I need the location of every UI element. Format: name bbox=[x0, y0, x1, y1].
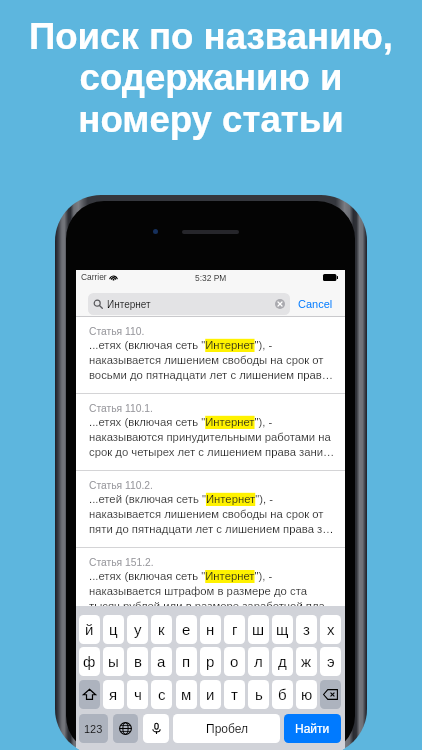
staticText: с bbox=[158, 686, 166, 703]
button[interactable]: о bbox=[224, 647, 245, 676]
button[interactable]: ц bbox=[103, 615, 124, 644]
button[interactable]: ж bbox=[296, 647, 317, 676]
staticText: ж bbox=[301, 653, 312, 670]
button[interactable]: н bbox=[200, 615, 221, 644]
button[interactable]: л bbox=[248, 647, 269, 676]
staticText: ф bbox=[83, 653, 96, 670]
staticText: н bbox=[206, 621, 215, 638]
staticText: ц bbox=[109, 621, 118, 638]
staticText: ...етей (включая сеть "Интернет"), - нак… bbox=[89, 493, 334, 535]
staticText: Carrier bbox=[81, 272, 107, 281]
button[interactable]: в bbox=[127, 647, 148, 676]
button[interactable]: т bbox=[224, 680, 245, 709]
staticText: ...етях (включая сеть "Интернет"), - нак… bbox=[89, 570, 337, 606]
button[interactable]: Dictate bbox=[143, 714, 169, 743]
button[interactable]: Clear bbox=[275, 299, 285, 309]
button[interactable]: ф bbox=[79, 647, 100, 676]
button[interactable]: к bbox=[151, 615, 172, 644]
staticText: Статья 151.2. bbox=[89, 557, 154, 569]
staticText: ч bbox=[134, 686, 142, 703]
staticText: Интернет bbox=[107, 299, 151, 310]
button[interactable]: м bbox=[176, 680, 197, 709]
button[interactable]: щ bbox=[272, 615, 293, 644]
staticText: е bbox=[182, 621, 191, 638]
button[interactable]: с bbox=[151, 680, 172, 709]
staticText: и bbox=[206, 686, 215, 703]
button[interactable]: е bbox=[176, 615, 197, 644]
staticText: к bbox=[158, 621, 165, 638]
button[interactable]: ч bbox=[127, 680, 148, 709]
staticText: я bbox=[109, 686, 118, 703]
button[interactable]: ю bbox=[296, 680, 317, 709]
staticText: ...етях (включая сеть "Интернет"), - нак… bbox=[89, 416, 335, 458]
staticText: э bbox=[327, 653, 335, 670]
button[interactable]: г bbox=[224, 615, 245, 644]
button[interactable]: Статья 110.1. bbox=[76, 394, 345, 470]
staticText: г bbox=[232, 621, 238, 638]
button[interactable]: Backspace bbox=[320, 680, 341, 709]
staticText: а bbox=[157, 653, 166, 670]
button[interactable]: Интернет bbox=[88, 293, 290, 315]
button[interactable]: Статья 151.2. bbox=[76, 548, 345, 606]
button[interactable]: у bbox=[127, 615, 148, 644]
button[interactable]: й bbox=[79, 615, 100, 644]
button[interactable]: Найти bbox=[284, 714, 341, 743]
button[interactable]: Пробел bbox=[173, 714, 280, 743]
staticText: м bbox=[181, 686, 192, 703]
staticText: Cancel bbox=[298, 298, 333, 310]
button[interactable]: х bbox=[320, 615, 341, 644]
staticText: п bbox=[182, 653, 191, 670]
staticText: Статья 110.1. bbox=[89, 403, 153, 415]
staticText: Статья 110.2. bbox=[89, 480, 153, 492]
button[interactable]: Language bbox=[113, 714, 138, 743]
button[interactable]: Статья 110.2. bbox=[76, 471, 345, 547]
staticText: 123 bbox=[84, 723, 103, 735]
staticText: ш bbox=[252, 621, 265, 638]
staticText: х bbox=[327, 621, 335, 638]
button[interactable]: ь bbox=[248, 680, 269, 709]
button[interactable]: р bbox=[200, 647, 221, 676]
staticText: Найти bbox=[295, 722, 330, 735]
button[interactable]: и bbox=[200, 680, 221, 709]
staticText: з bbox=[303, 621, 310, 638]
staticText: б bbox=[278, 686, 287, 703]
button[interactable]: Cancel bbox=[298, 293, 333, 315]
staticText: 5:32 PM bbox=[195, 273, 227, 282]
staticText: ы bbox=[108, 653, 119, 670]
staticText: щ bbox=[276, 621, 289, 638]
button[interactable]: э bbox=[320, 647, 341, 676]
button[interactable]: ш bbox=[248, 615, 269, 644]
button[interactable]: Статья 110. bbox=[76, 317, 345, 393]
button[interactable]: а bbox=[151, 647, 172, 676]
staticText: в bbox=[134, 653, 142, 670]
staticText: д bbox=[278, 653, 287, 670]
staticText: л bbox=[254, 653, 263, 670]
staticText: т bbox=[231, 686, 238, 703]
staticText: р bbox=[206, 653, 215, 670]
button[interactable]: п bbox=[176, 647, 197, 676]
button[interactable]: 123 bbox=[79, 714, 108, 743]
button[interactable]: з bbox=[296, 615, 317, 644]
staticText: ь bbox=[255, 686, 263, 703]
button[interactable]: Shift bbox=[79, 680, 100, 709]
staticText: Пробел bbox=[206, 722, 248, 735]
button[interactable]: б bbox=[272, 680, 293, 709]
staticText: о bbox=[230, 653, 239, 670]
staticText: ю bbox=[301, 686, 313, 703]
button[interactable]: д bbox=[272, 647, 293, 676]
staticText: й bbox=[85, 621, 94, 638]
staticText: Статья 110. bbox=[89, 326, 145, 338]
staticText: Поиск по названию, содержанию и номеру с… bbox=[0, 16, 422, 140]
staticText: ...етях (включая сеть "Интернет"), - нак… bbox=[89, 339, 334, 381]
button[interactable]: я bbox=[103, 680, 124, 709]
button[interactable]: ы bbox=[103, 647, 124, 676]
staticText: у bbox=[134, 621, 142, 638]
